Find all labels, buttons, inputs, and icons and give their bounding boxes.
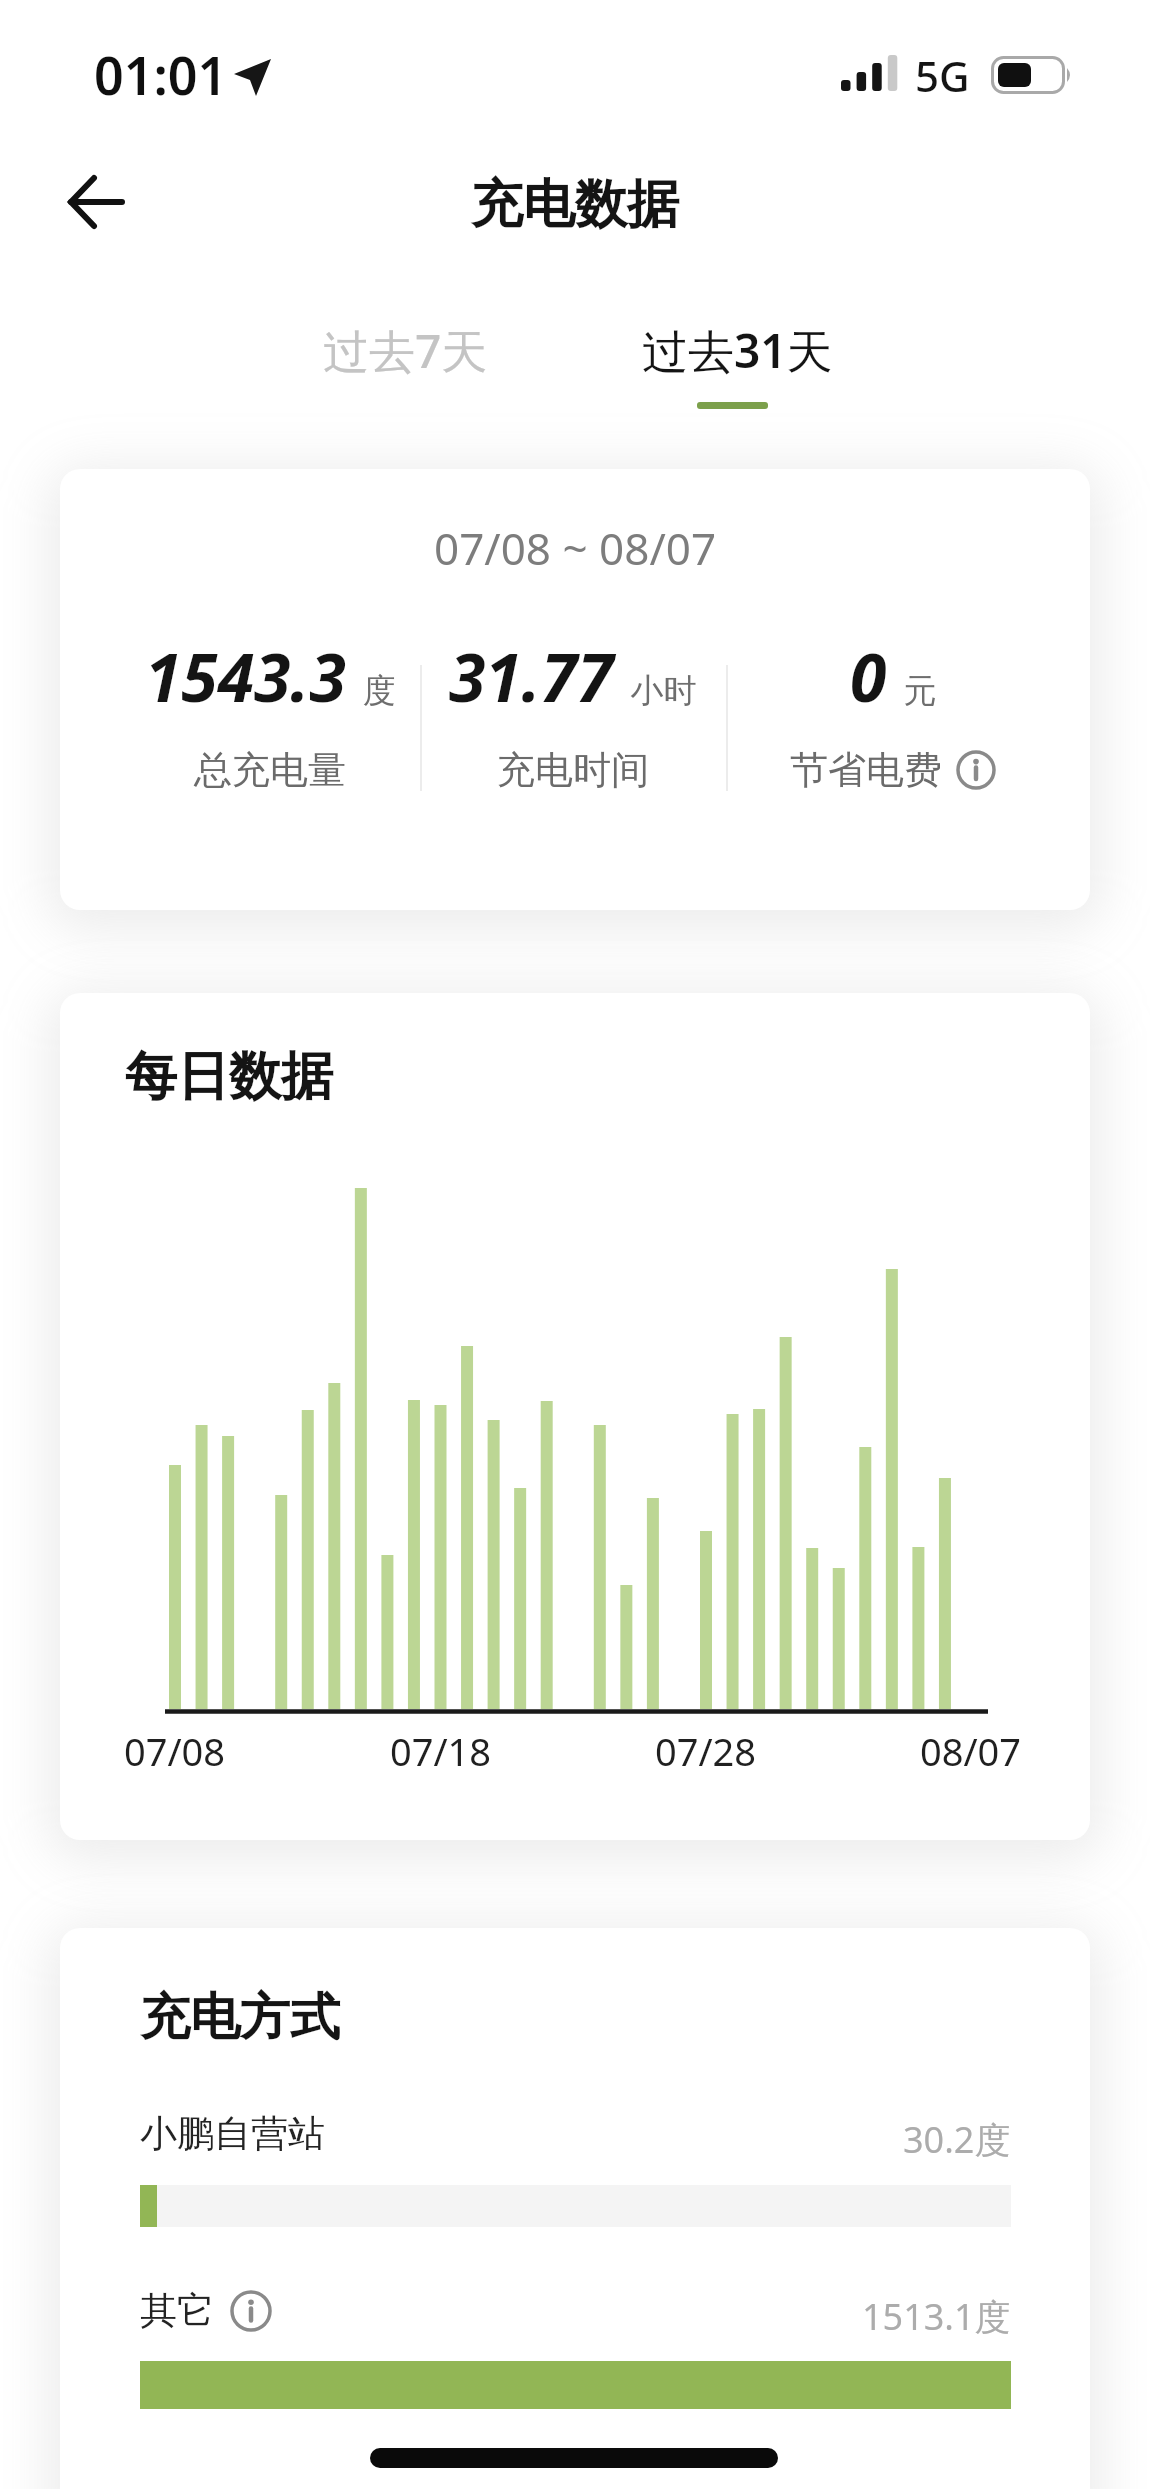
staticText: 1543.3 度 bbox=[145, 631, 396, 721]
staticText: 07/28 bbox=[655, 1725, 757, 1777]
staticText: 过去7天 bbox=[323, 319, 488, 382]
staticText: 01:01 bbox=[94, 39, 228, 110]
staticText: 节省电费 bbox=[790, 746, 942, 794]
staticText: 0 元 bbox=[850, 631, 937, 721]
staticText: 每日数据 bbox=[125, 1044, 333, 1110]
button[interactable]: 过去31天 bbox=[620, 305, 855, 395]
staticText: 5G bbox=[915, 47, 970, 104]
staticText: 07/18 bbox=[390, 1725, 492, 1777]
staticText: 08/07 bbox=[920, 1725, 1022, 1777]
staticText: 30.2度 bbox=[903, 2115, 1011, 2164]
button[interactable] bbox=[52, 157, 140, 247]
staticText: 小鹏自营站 bbox=[140, 2110, 325, 2157]
staticText: 07/08 ~ 08/07 bbox=[434, 518, 717, 578]
staticText: 充电时间 bbox=[497, 746, 649, 794]
staticText: 31.77 小时 bbox=[449, 631, 697, 721]
staticText: 总充电量 bbox=[194, 746, 346, 794]
staticText: 1513.1度 bbox=[862, 2292, 1011, 2341]
staticText: 07/08 bbox=[124, 1725, 226, 1777]
staticText: 其它 bbox=[140, 2287, 214, 2334]
staticText: 充电数据 bbox=[471, 172, 679, 238]
button[interactable]: 过去7天 bbox=[300, 305, 510, 395]
staticText: 充电方式 bbox=[140, 1986, 340, 2049]
staticText: 过去31天 bbox=[642, 319, 833, 382]
